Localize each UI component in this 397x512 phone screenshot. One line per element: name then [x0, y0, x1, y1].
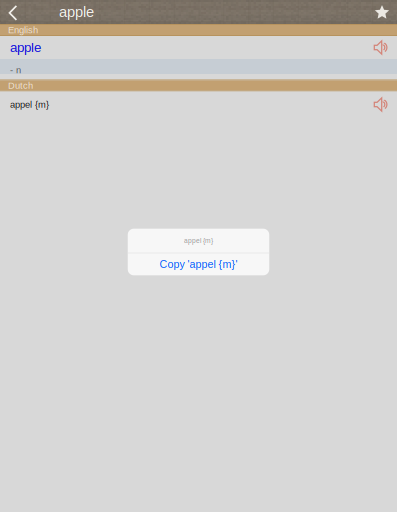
staticText: Copy 'appel {m}' [159, 258, 237, 270]
button[interactable]: Play pronunciation of apple [359, 36, 397, 59]
button[interactable]: Back [0, 0, 59, 24]
button[interactable]: Copy 'appel {m}' [128, 253, 269, 275]
staticText: appel {m} [10, 99, 49, 110]
button[interactable]: Add to favourites [357, 0, 397, 24]
staticText: - n [10, 65, 21, 75]
staticText: appel {m} [184, 237, 213, 244]
staticText: apple [59, 4, 94, 20]
staticText: Dutch [8, 80, 33, 91]
staticText: apple [10, 40, 41, 55]
button[interactable]: Play pronunciation of appel {m} [359, 91, 397, 117]
staticText: English [8, 25, 38, 35]
